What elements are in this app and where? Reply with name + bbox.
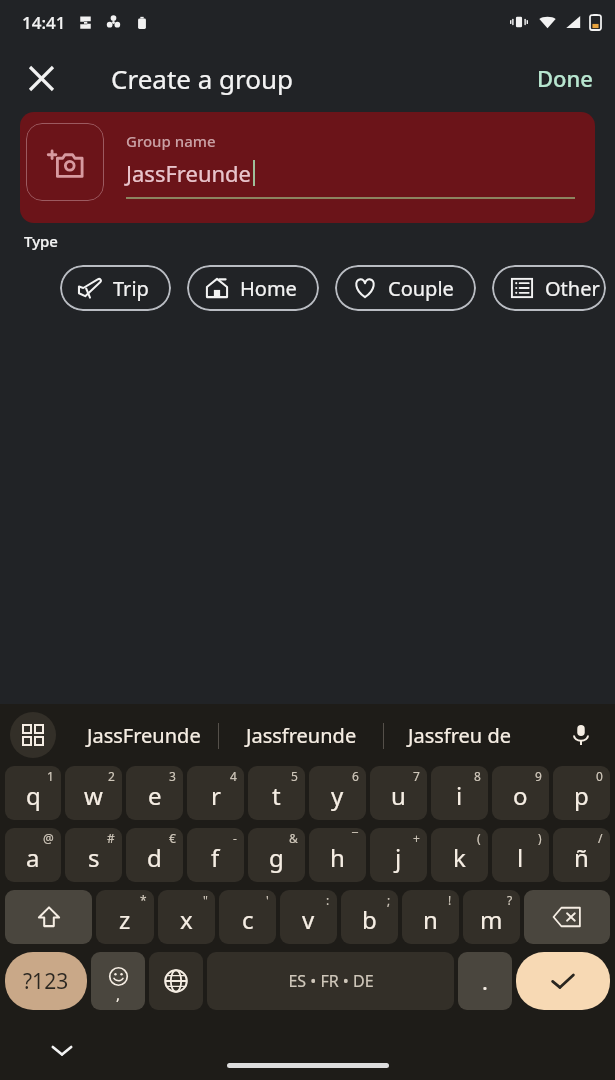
button[interactable]: ?123 <box>5 952 87 1010</box>
button[interactable]: c <box>219 890 276 944</box>
button[interactable]: Close <box>14 51 68 105</box>
staticText: o <box>513 779 528 812</box>
button[interactable]: v <box>280 890 337 944</box>
staticText: d <box>147 841 162 874</box>
button[interactable]: Voice input <box>561 715 601 755</box>
button[interactable]: p <box>553 766 610 820</box>
button[interactable]: Backspace <box>524 890 610 944</box>
button[interactable]: g <box>248 828 305 882</box>
staticText: Home <box>240 275 297 302</box>
staticText: Other <box>545 275 600 302</box>
staticText: 3 <box>169 768 176 784</box>
staticText: 2 <box>108 768 115 784</box>
staticText: : <box>326 892 330 908</box>
staticText: ñ <box>574 841 589 874</box>
staticText: Create a group <box>111 61 294 96</box>
button[interactable]: o <box>492 766 549 820</box>
staticText: Type <box>24 231 58 251</box>
button[interactable]: y <box>309 766 366 820</box>
button[interactable]: r <box>187 766 244 820</box>
staticText: m <box>480 903 503 936</box>
button[interactable]: Couple <box>335 265 476 311</box>
button[interactable]: h <box>309 828 366 882</box>
staticText: # <box>107 830 115 846</box>
staticText: g <box>269 841 284 874</box>
button[interactable]: x <box>158 890 215 944</box>
staticText: l <box>517 841 524 874</box>
staticText: z <box>119 903 131 936</box>
button[interactable]: z <box>96 890 154 944</box>
staticText: " <box>203 892 208 908</box>
button[interactable]: Add group photo <box>26 123 104 201</box>
staticText: t <box>272 779 281 812</box>
button[interactable]: t <box>248 766 305 820</box>
button[interactable]: a <box>5 828 61 882</box>
button[interactable]: b <box>341 890 398 944</box>
button[interactable]: n <box>402 890 459 944</box>
staticText: 8 <box>474 768 481 784</box>
button[interactable]: s <box>65 828 122 882</box>
staticText: & <box>289 830 298 846</box>
staticText: 7 <box>413 768 420 784</box>
staticText: 14:41 <box>22 11 66 34</box>
staticText: k <box>453 841 466 874</box>
button[interactable]: Other <box>492 265 606 311</box>
button[interactable]: Shift <box>5 890 92 944</box>
button[interactable]: e <box>126 766 183 820</box>
button[interactable]: i <box>431 766 488 820</box>
staticText: u <box>391 779 406 812</box>
button[interactable]: j <box>370 828 427 882</box>
staticText: Couple <box>388 275 454 302</box>
button[interactable]: Home <box>187 265 319 311</box>
staticText: , <box>116 984 121 1004</box>
button[interactable]: Hide keyboard <box>40 1028 84 1072</box>
button[interactable]: k <box>431 828 488 882</box>
button[interactable]: Trip <box>60 265 171 311</box>
staticText: e <box>148 779 162 812</box>
staticText: q <box>26 779 41 812</box>
button[interactable]: Change language <box>149 952 203 1010</box>
button[interactable]: d <box>126 828 183 882</box>
button[interactable]: w <box>65 766 122 820</box>
button[interactable]: . <box>458 952 512 1010</box>
button[interactable]: ES • FR • DE <box>207 952 454 1010</box>
button[interactable]: ñ <box>553 828 610 882</box>
button[interactable]: Enter <box>516 952 610 1010</box>
staticText: ?123 <box>23 967 69 996</box>
staticText: Trip <box>113 275 149 302</box>
button[interactable]: Toolbar <box>10 712 56 758</box>
button[interactable]: Emoji <box>91 952 145 1010</box>
button[interactable]: Done <box>523 55 607 101</box>
staticText: ( <box>477 830 481 846</box>
button[interactable]: Jassfreunde <box>219 722 383 749</box>
staticText: 6 <box>352 768 359 784</box>
staticText: p <box>574 779 589 812</box>
staticText: v <box>302 903 315 936</box>
staticText: * <box>140 892 147 908</box>
staticText: Jassfreu de <box>408 722 511 749</box>
staticText: y <box>331 779 344 812</box>
staticText: JassFreunde <box>126 158 252 188</box>
button[interactable]: JassFreunde <box>70 722 218 749</box>
button[interactable]: f <box>187 828 244 882</box>
staticText: 5 <box>291 768 298 784</box>
staticText: - <box>233 830 237 846</box>
staticText: i <box>456 779 463 812</box>
staticText: x <box>180 903 193 936</box>
staticText: ; <box>387 892 391 908</box>
staticText: a <box>26 841 40 874</box>
staticText: 4 <box>230 768 237 784</box>
staticText: / <box>598 830 603 846</box>
staticText: ! <box>448 892 452 908</box>
button[interactable]: l <box>492 828 549 882</box>
button[interactable]: m <box>463 890 520 944</box>
staticText: b <box>362 903 377 936</box>
staticText: ¯ <box>352 830 359 846</box>
staticText: j <box>395 841 402 874</box>
staticText: . <box>482 966 488 996</box>
staticText: Done <box>537 63 593 93</box>
button[interactable]: q <box>5 766 61 820</box>
button[interactable]: u <box>370 766 427 820</box>
staticText: s <box>88 841 100 874</box>
button[interactable]: Jassfreu de <box>384 722 534 749</box>
